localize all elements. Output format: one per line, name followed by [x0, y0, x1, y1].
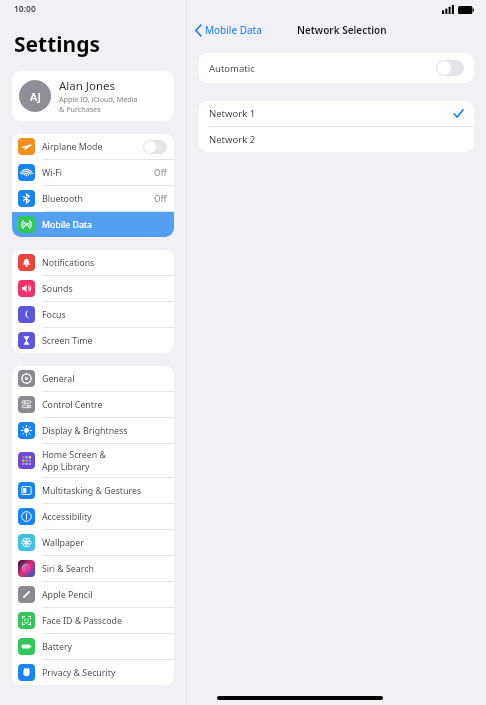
- staticText: Off: [154, 193, 167, 205]
- staticText: Mobile Data: [42, 219, 92, 231]
- staticText: Network 1: [209, 107, 256, 120]
- button[interactable]: Network 1: [199, 101, 474, 126]
- button[interactable]: Mobile Data: [12, 212, 174, 237]
- button[interactable]: Toggle: [143, 140, 167, 154]
- staticText: Off: [154, 167, 167, 179]
- staticText: Display & Brightness: [42, 425, 128, 437]
- button[interactable]: Mobile Data: [187, 21, 270, 39]
- button[interactable]: Network 2: [199, 127, 474, 152]
- staticText: Wallpaper: [42, 537, 84, 549]
- button[interactable]: Apple Pencil: [12, 582, 174, 607]
- button[interactable]: Accessibility: [12, 504, 174, 529]
- staticText: Settings: [14, 30, 101, 59]
- button[interactable]: General: [12, 366, 174, 391]
- button[interactable]: Privacy & Security: [12, 660, 174, 685]
- button[interactable]: Focus: [12, 302, 174, 327]
- button[interactable]: Siri & Search: [12, 556, 174, 581]
- button[interactable]: AJ: [12, 71, 174, 121]
- staticText: Siri & Search: [42, 563, 94, 575]
- staticText: Face ID & Passcode: [42, 615, 122, 627]
- button[interactable]: Wi-Fi: [12, 160, 174, 185]
- staticText: 10:00: [14, 3, 36, 15]
- button[interactable]: Home Screen &: [12, 444, 174, 477]
- button[interactable]: Screen Time: [12, 328, 174, 353]
- button[interactable]: Notifications: [12, 250, 174, 275]
- button[interactable]: Battery: [12, 634, 174, 659]
- staticText: App Library: [42, 461, 90, 473]
- staticText: Network 2: [209, 133, 256, 146]
- button[interactable]: Wallpaper: [12, 530, 174, 555]
- staticText: Accessibility: [42, 511, 92, 523]
- staticText: Apple Pencil: [42, 589, 93, 601]
- staticText: Wi-Fi: [42, 167, 63, 179]
- button[interactable]: Control Centre: [12, 392, 174, 417]
- staticText: Alan Jones: [59, 78, 116, 94]
- button[interactable]: Toggle: [436, 60, 464, 76]
- staticText: Airplane Mode: [42, 141, 103, 153]
- staticText: Apple ID, iCloud, Media: [59, 94, 138, 104]
- button[interactable]: Airplane Mode: [12, 134, 174, 159]
- staticText: & Purchases: [59, 104, 101, 114]
- staticText: Multitasking & Gestures: [42, 485, 142, 497]
- other: Selected: [453, 108, 464, 119]
- staticText: Notifications: [42, 257, 95, 269]
- staticText: Automatic: [209, 62, 255, 75]
- button[interactable]: Sounds: [12, 276, 174, 301]
- staticText: Control Centre: [42, 399, 103, 411]
- staticText: Bluetooth: [42, 193, 83, 205]
- button[interactable]: Face ID & Passcode: [12, 608, 174, 633]
- button[interactable]: Display & Brightness: [12, 418, 174, 443]
- staticText: Focus: [42, 309, 66, 321]
- staticText: Battery: [42, 641, 73, 653]
- staticText: General: [42, 373, 75, 385]
- staticText: Screen Time: [42, 335, 93, 347]
- staticText: Network Selection: [297, 23, 387, 37]
- staticText: Mobile Data: [205, 23, 262, 37]
- button[interactable]: Automatic: [199, 53, 474, 83]
- staticText: Privacy & Security: [42, 667, 116, 679]
- staticText: Sounds: [42, 283, 73, 295]
- button[interactable]: Multitasking & Gestures: [12, 478, 174, 503]
- button[interactable]: Bluetooth: [12, 186, 174, 211]
- staticText: AJ: [30, 89, 41, 104]
- staticText: Home Screen &: [42, 449, 106, 461]
